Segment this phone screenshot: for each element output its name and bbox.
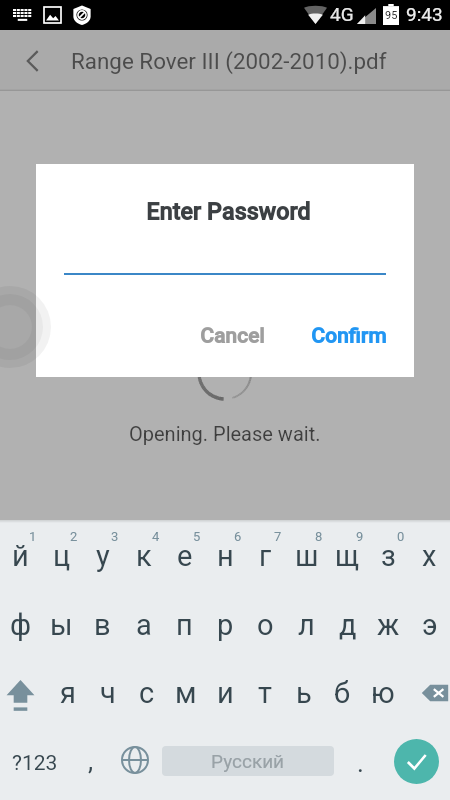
button[interactable]: 0 [368,520,409,590]
staticText: о [257,608,274,642]
staticText: 1 [29,529,37,544]
staticText: щ [335,539,360,573]
button[interactable]: Cancel [184,315,281,358]
staticText: х [422,539,437,573]
staticText: 2 [70,529,78,544]
button[interactable]: б [323,658,362,728]
staticText: з [381,539,396,573]
staticText: ч [100,676,116,710]
button[interactable]: Confirm [295,315,403,358]
staticText: е [177,539,193,573]
button[interactable]: 3 [82,520,123,590]
staticText: ы [50,608,73,642]
button[interactable]: ь [284,658,323,728]
button[interactable]: а [123,590,164,660]
staticText: м [175,676,197,710]
button[interactable]: ы [41,590,82,660]
button[interactable]: 2 [41,520,82,590]
button[interactable]: 1 [0,520,41,590]
button[interactable]: и [206,658,245,728]
button[interactable]: л [286,590,327,660]
staticText: ?123 [12,751,58,776]
button[interactable]: ф [0,590,41,660]
button[interactable]: х [409,520,450,590]
staticText: Range Rover III (2002-2010).pdf [71,48,387,74]
staticText: 95 [385,9,398,22]
button[interactable]: Shift [0,660,41,730]
button[interactable]: д [327,590,368,660]
staticText: а [136,608,152,642]
staticText: Opening. Please wait. [129,422,321,445]
staticText: ь [296,676,312,710]
staticText: 7 [274,529,282,544]
staticText: и [217,676,234,710]
button[interactable]: 6 [205,520,246,590]
button[interactable]: м [166,658,205,728]
button[interactable]: Русский [162,746,334,776]
button[interactable]: ?123 [0,730,70,800]
button[interactable]: . [340,730,380,800]
staticText: Confirm [311,324,387,349]
staticText: ю [371,676,395,710]
button[interactable]: ж [368,590,409,660]
staticText: п [176,608,193,642]
button[interactable]: т [245,658,284,728]
staticText: . [357,748,364,778]
staticText: 3 [111,529,119,544]
staticText: г [259,539,272,573]
staticText: Enter Password [146,198,311,225]
staticText: у [96,539,110,573]
staticText: 9 [356,529,364,544]
button[interactable]: 8 [286,520,327,590]
staticText: 8 [315,529,323,544]
staticText: я [60,676,76,710]
staticText: ф [10,608,32,642]
button[interactable]: ч [88,658,127,728]
button[interactable]: п [164,590,205,660]
staticText: 9:43 [406,3,443,25]
staticText: т [258,676,272,710]
staticText: б [334,676,351,710]
button[interactable]: р [205,590,246,660]
staticText: к [136,539,152,573]
staticText: 4 [152,529,160,544]
button[interactable]: я [48,658,87,728]
button[interactable]: с [127,658,166,728]
staticText: Русский [211,750,285,772]
staticText: Cancel [200,324,265,349]
staticText: й [12,539,29,573]
button[interactable]: Change language [116,730,154,800]
staticText: 6 [234,529,242,544]
button[interactable]: 9 [327,520,368,590]
staticText: ж [377,608,400,642]
button[interactable]: 5 [164,520,205,590]
button[interactable]: в [82,590,123,660]
button[interactable]: о [245,590,286,660]
button[interactable]: э [409,590,450,660]
staticText: с [139,676,155,710]
staticText: д [339,608,357,642]
button[interactable]: ю [363,658,402,728]
staticText: ш [295,539,319,573]
staticText: р [217,608,234,642]
staticText: л [298,608,315,642]
button[interactable]: 7 [245,520,286,590]
staticText: н [217,539,234,573]
staticText: э [422,608,438,642]
button[interactable]: Done [386,726,446,796]
staticText: , [88,746,94,776]
staticText: 5 [193,529,201,544]
button[interactable]: Delete [409,660,450,730]
button[interactable]: Back [5,33,61,89]
staticText: 0 [397,529,405,544]
button[interactable]: , [70,730,112,800]
button[interactable]: 4 [123,520,164,590]
staticText: в [94,608,111,642]
staticText: ц [53,539,71,573]
staticText: 4G [330,3,354,25]
